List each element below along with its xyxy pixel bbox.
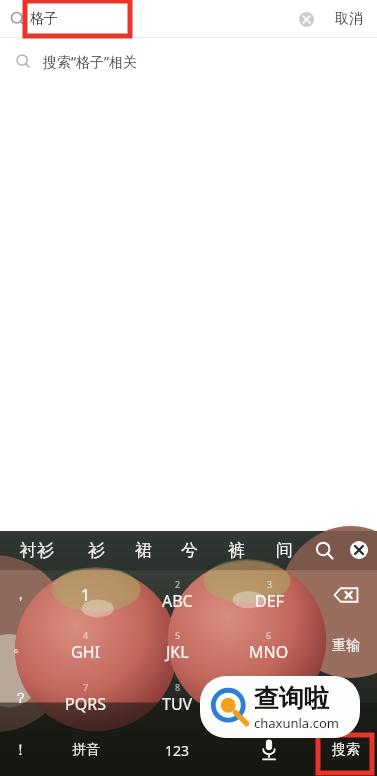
staticText: ， — [13, 585, 28, 604]
staticText: 重输 — [332, 637, 360, 655]
button[interactable]: 7 — [40, 672, 131, 724]
staticText: 1 — [81, 584, 91, 606]
staticText: 裤 — [228, 540, 245, 561]
button[interactable]: 6 — [223, 620, 315, 672]
staticText: 。 — [13, 637, 28, 656]
button[interactable]: 1 — [40, 569, 131, 620]
button[interactable]: Delete — [315, 569, 377, 620]
staticText: ABC — [162, 590, 193, 612]
other: Search — [10, 11, 26, 27]
button[interactable]: 2 — [131, 569, 223, 620]
other: Voice input — [256, 737, 282, 763]
staticText: ？ — [13, 689, 28, 708]
button[interactable]: Voice input — [223, 724, 315, 776]
staticText: 123 — [165, 741, 190, 760]
button[interactable]: 3 — [223, 569, 315, 620]
button[interactable]: Search — [307, 531, 341, 569]
staticText: 格子 — [30, 10, 58, 28]
button[interactable]: 9 — [223, 672, 315, 724]
staticText: 9 — [267, 681, 273, 693]
button[interactable]: 4 — [40, 620, 131, 672]
staticText: 查询啦 — [254, 683, 329, 714]
button[interactable]: 重输 — [315, 620, 377, 672]
button[interactable]: 123 — [131, 724, 223, 776]
staticText: 4 — [83, 629, 89, 641]
button[interactable]: 5 — [131, 620, 223, 672]
button[interactable]: Clear — [291, 4, 321, 34]
staticText: GHI — [71, 641, 100, 663]
button[interactable]: 搜索“格子”相关 — [0, 38, 377, 84]
staticText: 5 — [175, 629, 181, 641]
button[interactable]: ！ — [0, 724, 40, 776]
staticText: MNO — [249, 641, 289, 663]
staticText: 3 — [267, 578, 273, 590]
button[interactable]: 取消 — [335, 0, 363, 37]
staticText: 兮 — [181, 540, 198, 561]
staticText: 8 — [175, 681, 181, 693]
button[interactable]: 衫 — [73, 531, 120, 569]
staticText: 间 — [276, 540, 293, 561]
button[interactable]: 裤 — [212, 531, 261, 569]
staticText: PQRS — [65, 693, 106, 715]
button[interactable] — [315, 672, 377, 724]
button[interactable]: 间 — [261, 531, 307, 569]
button[interactable]: 。 — [0, 620, 40, 672]
button[interactable]: 拼音 — [40, 724, 131, 776]
staticText: chaxunla.com — [254, 714, 339, 732]
button[interactable]: Close candidates — [341, 531, 377, 569]
staticText: 取消 — [335, 10, 363, 28]
staticText: 2 — [175, 578, 181, 590]
staticText: 搜索“格子”相关 — [43, 52, 138, 71]
staticText: 衬衫 — [20, 540, 54, 561]
button[interactable]: ， — [0, 569, 40, 620]
staticText: 6 — [266, 629, 272, 641]
staticText: JKL — [166, 641, 189, 663]
staticText: 搜索 — [332, 741, 360, 759]
staticText: WXYZ — [248, 693, 291, 715]
staticText: 7 — [83, 681, 89, 693]
button[interactable]: ？ — [0, 672, 40, 724]
staticText: DEF — [255, 590, 284, 612]
staticText: ！ — [13, 741, 28, 760]
button[interactable]: 裙 — [120, 531, 166, 569]
staticText: 衫 — [88, 540, 105, 561]
button[interactable]: 衬衫 — [0, 531, 73, 569]
button[interactable]: 兮 — [166, 531, 212, 569]
staticText: 裙 — [135, 540, 152, 561]
staticText: TUV — [162, 693, 193, 715]
staticText: 拼音 — [72, 741, 100, 759]
button[interactable]: 8 — [131, 672, 223, 724]
button[interactable]: 搜索 — [315, 724, 377, 776]
